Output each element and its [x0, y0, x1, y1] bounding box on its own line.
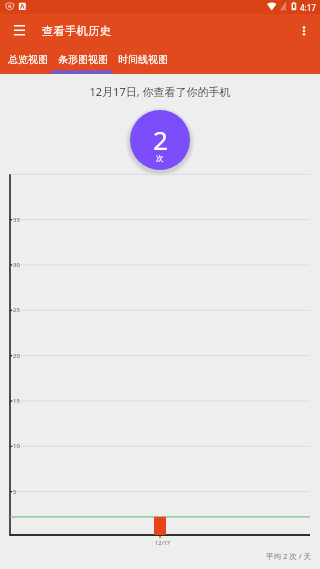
- button[interactable]: More options: [287, 14, 320, 47]
- staticText: 查看手机历史: [42, 24, 111, 38]
- staticText: 15: [13, 397, 20, 405]
- button[interactable]: 时间线视图: [112, 47, 173, 74]
- staticText: 25: [13, 306, 20, 314]
- staticText: 35: [13, 216, 20, 224]
- staticText: 条形图视图: [58, 53, 108, 66]
- button[interactable]: 2: [130, 110, 190, 170]
- staticText: 时间线视图: [118, 53, 168, 66]
- staticText: 总览视图: [8, 53, 48, 66]
- staticText: 2: [153, 122, 168, 157]
- staticText: 30: [13, 261, 20, 269]
- staticText: 20: [13, 352, 20, 360]
- staticText: 5: [13, 488, 17, 496]
- staticText: 平均 2 次 / 天: [266, 551, 311, 561]
- staticText: 12月17日, 你查看了你的手机: [0, 84, 320, 99]
- button[interactable]: 条形图视图: [51, 47, 112, 74]
- staticText: 12/17: [155, 539, 170, 547]
- staticText: 次: [156, 154, 164, 163]
- button[interactable]: 总览视图: [0, 47, 51, 74]
- staticText: 4:17: [300, 2, 316, 13]
- button[interactable]: Navigation menu: [0, 14, 39, 47]
- staticText: 10: [13, 442, 20, 450]
